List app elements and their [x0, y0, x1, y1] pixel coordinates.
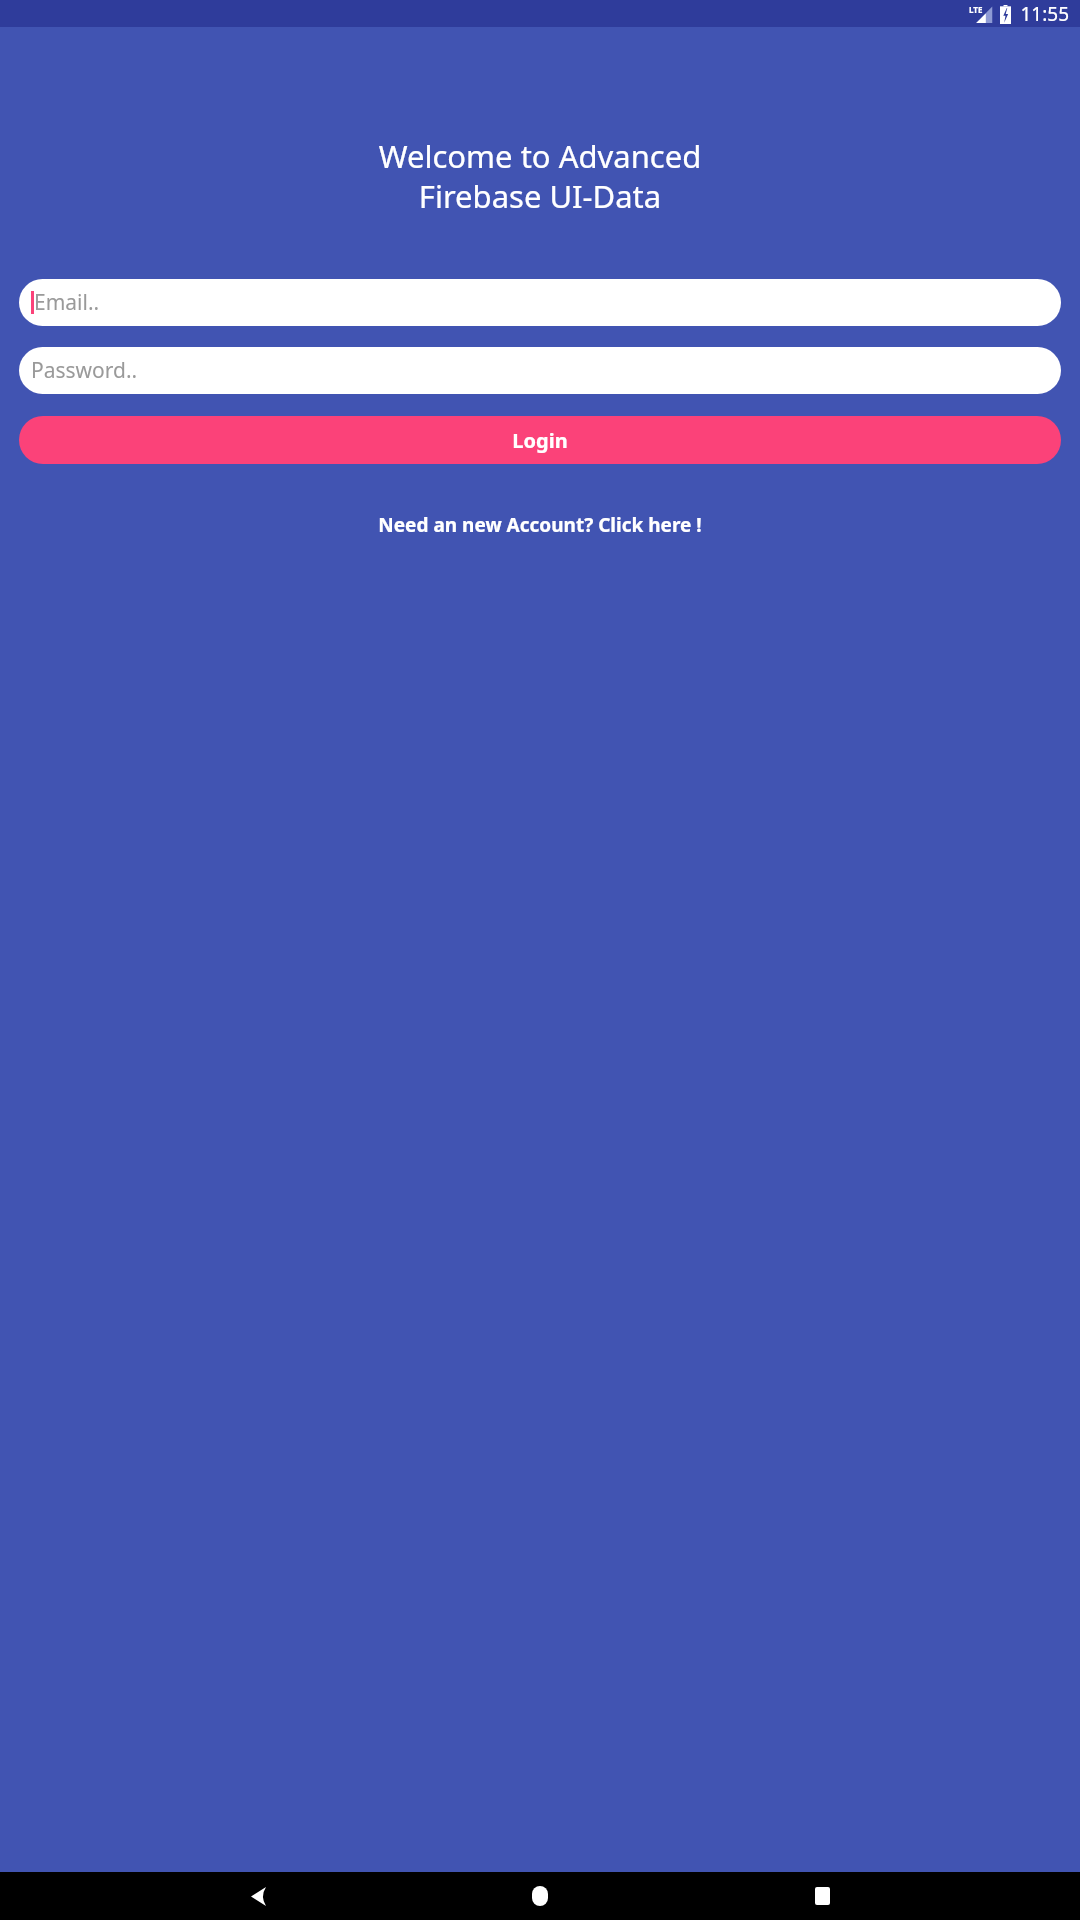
staticText: Password..	[31, 356, 138, 385]
button[interactable]: Home	[516, 1872, 564, 1920]
button[interactable]: Login	[19, 416, 1061, 464]
button[interactable]: Recent apps	[798, 1872, 846, 1920]
staticText: LTE	[969, 4, 983, 15]
button[interactable]: Need an new Account? Click here !	[0, 502, 1080, 548]
staticText: Welcome to Advanced Firebase UI-Data	[40, 135, 1040, 217]
staticText: Email..	[34, 288, 100, 317]
button[interactable]: Back	[234, 1872, 282, 1920]
staticText: Login	[512, 427, 568, 454]
button[interactable]: Email	[19, 279, 1061, 326]
staticText: Need an new Account? Click here !	[378, 512, 702, 538]
button[interactable]: Password	[19, 347, 1061, 394]
staticText: 11:55	[1020, 1, 1069, 27]
